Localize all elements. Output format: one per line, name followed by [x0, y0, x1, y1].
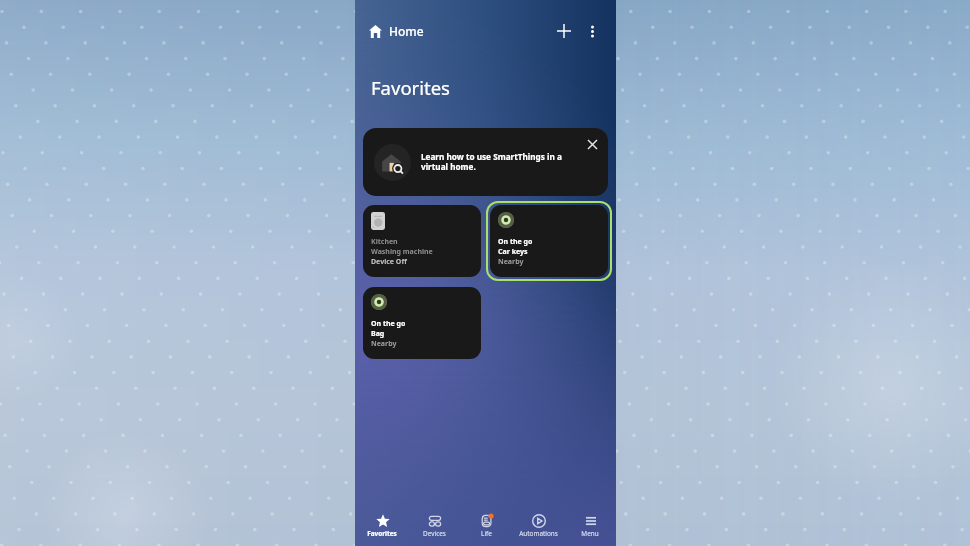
staticText: On the go — [371, 319, 406, 329]
button[interactable]: On the go — [490, 205, 608, 277]
staticText: Automations — [519, 529, 558, 538]
staticText: Bag — [371, 329, 385, 339]
staticText: Favorites — [367, 529, 397, 538]
button[interactable]: Learn how to use SmartThings in a virtua… — [363, 128, 608, 196]
button[interactable]: Menu — [578, 510, 602, 541]
staticText: Nearby — [498, 257, 524, 267]
button[interactable]: Add — [552, 19, 576, 43]
button[interactable]: Close — [582, 134, 602, 154]
staticText: Kitchen — [371, 237, 398, 247]
staticText: Home — [389, 23, 424, 39]
button[interactable]: Home — [367, 18, 426, 44]
staticText: Washing machine — [371, 247, 433, 257]
button[interactable]: Kitchen — [363, 205, 481, 277]
button[interactable]: More options — [580, 19, 604, 43]
staticText: On the go — [498, 237, 533, 247]
button[interactable]: On the go — [363, 287, 481, 359]
staticText: Menu — [581, 529, 599, 538]
staticText: Favorites — [371, 75, 450, 100]
button[interactable]: Automations — [516, 510, 561, 541]
staticText: Car keys — [498, 247, 528, 257]
staticText: Learn how to use SmartThings in a virtua… — [421, 151, 563, 173]
button[interactable]: Favorites — [364, 510, 400, 541]
staticText: Nearby — [371, 339, 397, 349]
staticText: Life — [481, 529, 492, 538]
button[interactable]: Life — [476, 510, 497, 541]
staticText: Device Off — [371, 257, 407, 267]
staticText: Devices — [423, 529, 446, 538]
button[interactable]: Devices — [420, 510, 449, 541]
